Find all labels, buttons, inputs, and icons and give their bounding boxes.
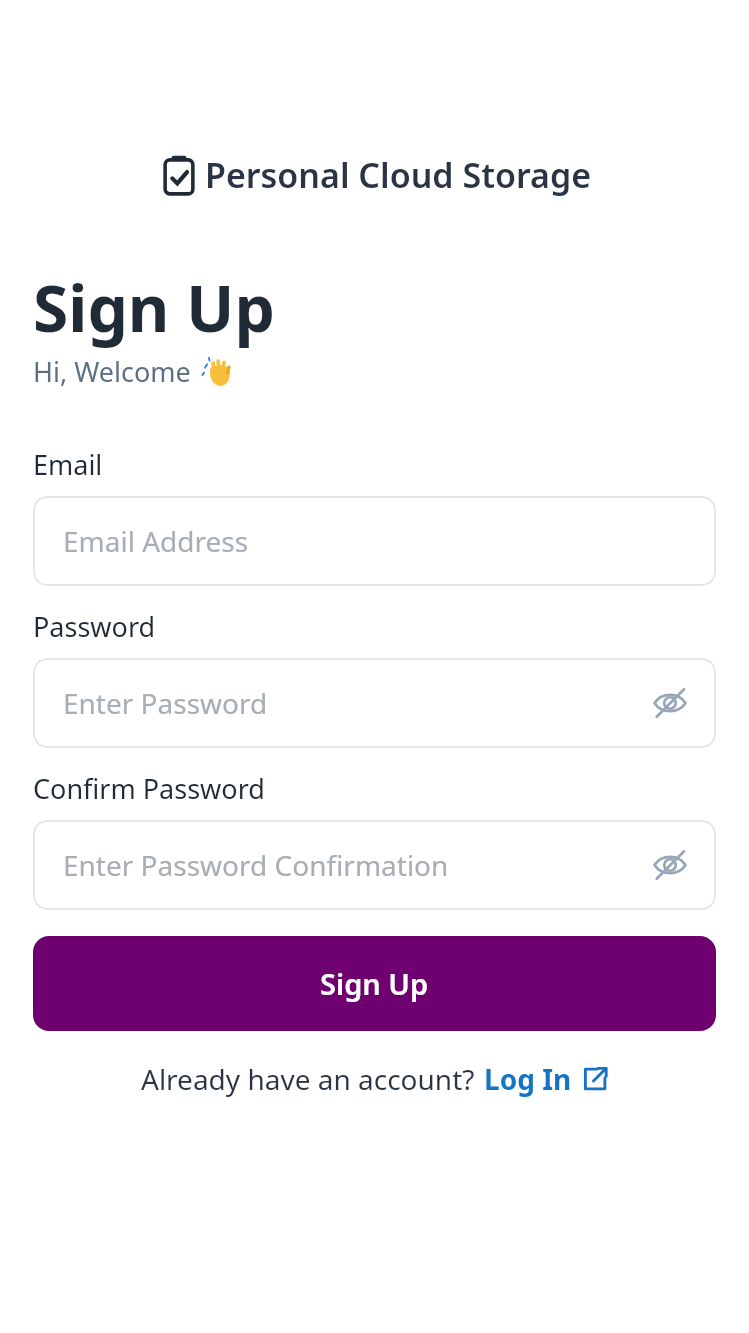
staticText: Password — [33, 608, 156, 645]
staticText: Sign Up — [320, 964, 429, 1003]
staticText: Enter Password — [63, 684, 268, 722]
button[interactable]: Password field — [33, 658, 716, 748]
other: Personal Cloud Storage logo — [158, 154, 200, 196]
button[interactable]: Email address field — [33, 496, 716, 586]
staticText: Personal Cloud Storage — [205, 152, 592, 198]
button[interactable]: Confirm password field — [33, 820, 716, 910]
staticText: Email — [33, 446, 103, 483]
staticText: Enter Password Confirmation — [63, 846, 449, 884]
button[interactable]: Log In — [484, 1060, 608, 1098]
staticText: Already have an account? — [141, 1060, 475, 1098]
staticText: Confirm Password — [33, 770, 265, 807]
staticText: Email Address — [63, 522, 249, 560]
other: Open log in page — [582, 1066, 608, 1092]
button[interactable]: Show password — [648, 843, 692, 887]
staticText: Log In — [484, 1060, 572, 1098]
button[interactable]: Show password — [648, 681, 692, 725]
staticText: Hi, Welcome — [33, 353, 191, 390]
button[interactable]: Sign Up — [33, 936, 716, 1031]
staticText: Sign Up — [33, 264, 275, 351]
button[interactable]: Personal Cloud Storage logo — [0, 152, 749, 198]
